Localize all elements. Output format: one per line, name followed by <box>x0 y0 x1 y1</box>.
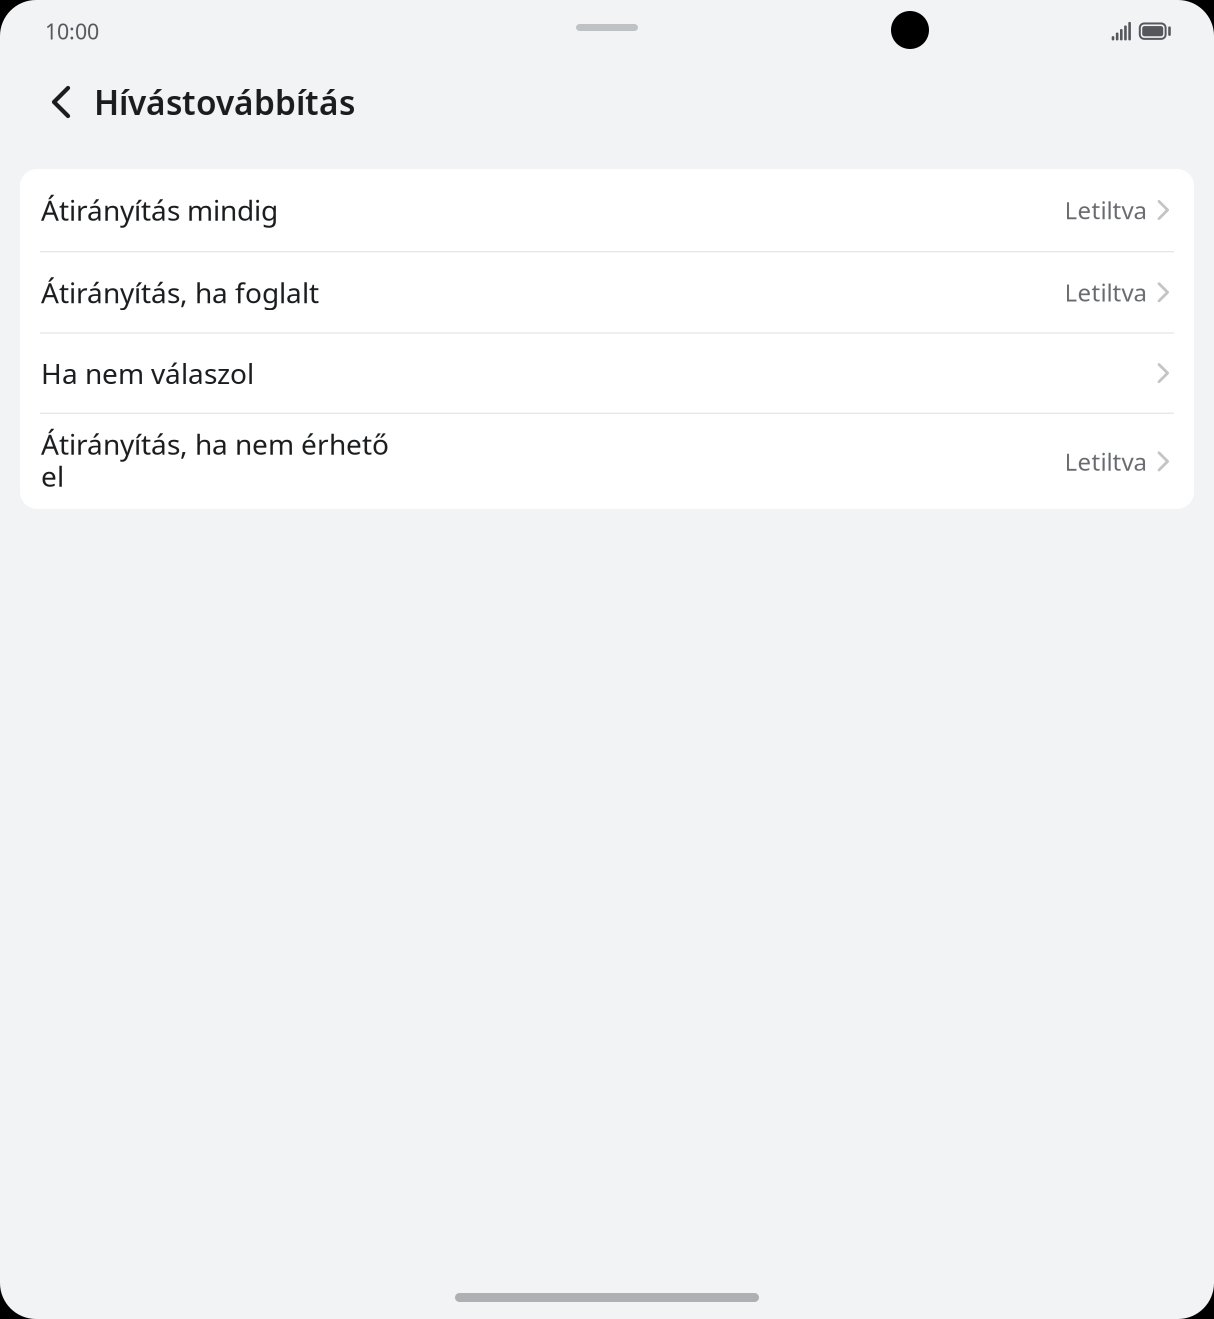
staticText: el <box>41 457 64 495</box>
staticText: Átirányítás mindig <box>41 191 278 229</box>
button[interactable]: Átirányítás, ha foglalt <box>20 252 1194 332</box>
staticText: Átirányítás, ha foglalt <box>41 274 319 311</box>
button[interactable]: Átirányítás, ha nem érhető <box>20 414 1194 509</box>
staticText: Letiltva <box>1065 276 1147 308</box>
button[interactable]: Ha nem válaszol <box>20 334 1194 413</box>
staticText: Ha nem válaszol <box>41 354 254 392</box>
staticText: Letiltva <box>1065 194 1147 226</box>
button[interactable]: Átirányítás mindig <box>20 169 1194 251</box>
staticText: 10:00 <box>45 17 99 45</box>
staticText: Hívástovábbítás <box>94 80 355 124</box>
button[interactable]: Back <box>0 72 94 132</box>
staticText: Átirányítás, ha nem érhető <box>41 425 389 462</box>
staticText: Letiltva <box>1065 445 1147 477</box>
